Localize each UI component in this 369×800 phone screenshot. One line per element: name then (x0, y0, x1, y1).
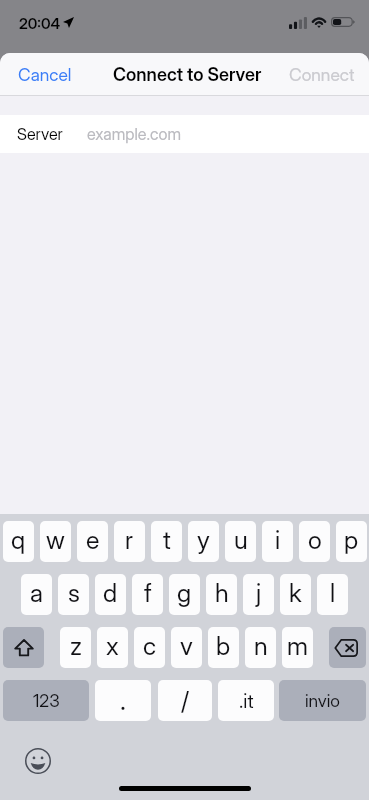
staticText: r (125, 525, 134, 555)
staticText: s (68, 578, 80, 608)
staticText: 123 (33, 690, 60, 711)
button[interactable]: y (188, 521, 219, 562)
button[interactable]: d (95, 574, 126, 615)
staticText: l (330, 578, 336, 608)
button[interactable]: / (158, 680, 212, 721)
button[interactable]: x (97, 627, 128, 668)
staticText: invio (305, 690, 340, 711)
button[interactable]: b (208, 627, 239, 668)
staticText: m (287, 631, 308, 661)
button[interactable]: n (245, 627, 276, 668)
staticText: Server (17, 124, 63, 144)
staticText: n (254, 631, 268, 661)
staticText: t (163, 525, 171, 555)
button[interactable]: c (134, 627, 165, 668)
button[interactable]: Shift (3, 627, 44, 668)
staticText: 20:04 (19, 14, 61, 32)
button[interactable]: m (282, 627, 313, 668)
button[interactable]: r (114, 521, 145, 562)
button[interactable]: Server (0, 115, 369, 153)
staticText: u (234, 525, 248, 555)
staticText: j (256, 578, 262, 608)
button[interactable]: l (317, 574, 348, 615)
staticText: a (30, 578, 43, 608)
button[interactable]: Emoji keyboard (24, 747, 51, 774)
button[interactable]: Backspace (329, 627, 366, 668)
staticText: y (197, 525, 210, 555)
button[interactable]: a (21, 574, 52, 615)
button[interactable]: u (225, 521, 256, 562)
staticText: Connect to Server (113, 64, 262, 86)
button[interactable]: i (262, 521, 293, 562)
button[interactable]: h (206, 574, 237, 615)
button[interactable]: e (77, 521, 108, 562)
button[interactable]: f (132, 574, 163, 615)
staticText: Cancel (18, 64, 72, 85)
staticText: q (11, 525, 26, 555)
button[interactable]: . (95, 680, 151, 721)
staticText: b (216, 631, 231, 661)
staticText: v (180, 631, 193, 661)
button[interactable]: w (40, 521, 71, 562)
staticText: . (120, 684, 126, 717)
staticText: e (86, 525, 100, 555)
staticText: / (181, 686, 190, 716)
button[interactable]: t (151, 521, 182, 562)
button[interactable]: k (280, 574, 311, 615)
staticText: .it (239, 689, 254, 713)
button[interactable]: g (169, 574, 200, 615)
button[interactable]: p (336, 521, 367, 562)
staticText: d (103, 578, 118, 608)
button[interactable]: v (171, 627, 202, 668)
staticText: g (177, 578, 192, 608)
staticText: c (143, 631, 157, 661)
staticText: Connect (289, 64, 355, 85)
button[interactable]: .it (218, 680, 274, 721)
button[interactable]: j (243, 574, 274, 615)
button[interactable]: q (3, 521, 34, 562)
staticText: i (275, 525, 281, 555)
button[interactable]: s (58, 574, 89, 615)
button[interactable]: Connect (275, 54, 369, 95)
button[interactable]: Cancel (0, 54, 86, 95)
button[interactable]: invio (279, 680, 366, 721)
staticText: k (289, 578, 302, 608)
button[interactable]: o (299, 521, 330, 562)
staticText: x (106, 631, 119, 661)
staticText: example.com (87, 124, 181, 144)
staticText: o (308, 525, 322, 555)
staticText: h (215, 578, 229, 608)
staticText: p (344, 525, 359, 555)
staticText: z (70, 631, 82, 661)
button[interactable]: z (60, 627, 91, 668)
staticText: f (144, 578, 152, 608)
button[interactable]: 123 (3, 680, 89, 721)
staticText: w (46, 525, 65, 555)
